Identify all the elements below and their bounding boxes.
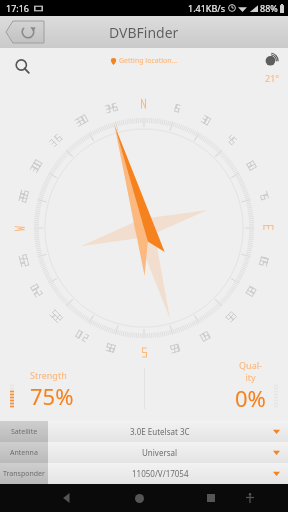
staticText: 0% <box>235 383 266 413</box>
button[interactable]: Satellite <box>0 421 288 442</box>
staticText: 1.41KB/s <box>188 2 225 14</box>
button[interactable]: Antenna <box>0 442 288 463</box>
button[interactable]: Home <box>127 486 151 510</box>
button[interactable]: Back <box>55 486 79 510</box>
button[interactable]: Recents <box>199 486 223 510</box>
button[interactable]: Transponder <box>0 463 288 484</box>
staticText: Strength <box>30 369 67 381</box>
staticText: Satellite <box>11 427 38 437</box>
staticText: 75% <box>30 381 74 411</box>
button[interactable]: Accessibility <box>238 486 262 510</box>
button[interactable]: Back <box>6 21 44 43</box>
staticText: 88% <box>260 2 278 14</box>
staticText: Universal <box>142 447 178 458</box>
staticText: 11050/V/17054 <box>132 468 189 479</box>
button[interactable]: Search <box>8 52 36 80</box>
staticText: Qual- ity <box>239 359 262 383</box>
staticText: 21° <box>265 72 280 84</box>
staticText: Transponder <box>3 469 45 479</box>
button[interactable]: Satellite dish <box>264 52 280 84</box>
staticText: 3.0E Eutelsat 3C <box>130 426 190 437</box>
staticText: Getting location... <box>119 56 178 66</box>
staticText: Antenna <box>10 448 38 458</box>
staticText: 17:16 <box>6 2 30 14</box>
staticText: DVBFinder <box>109 23 179 42</box>
